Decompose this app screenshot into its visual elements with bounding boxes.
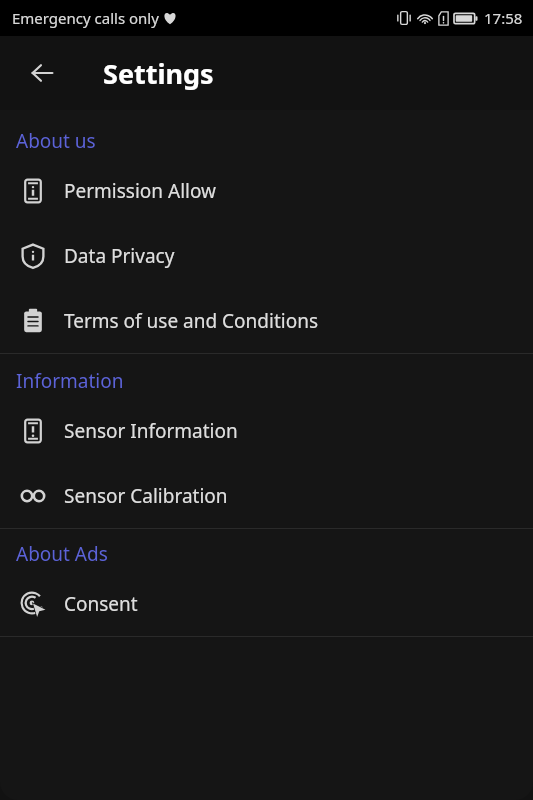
staticText: Terms of use and Conditions bbox=[64, 308, 319, 334]
button[interactable]: Terms of use and Conditions bbox=[0, 288, 533, 353]
button[interactable]: Sensor Calibration bbox=[0, 463, 533, 528]
button[interactable]: Sensor Information bbox=[0, 398, 533, 463]
button[interactable]: Data Privacy bbox=[0, 223, 533, 288]
staticText: Data Privacy bbox=[64, 243, 175, 269]
staticText: Emergency calls only bbox=[12, 8, 159, 28]
staticText: About us bbox=[16, 128, 96, 154]
staticText: Permission Allow bbox=[64, 178, 217, 204]
staticText: Sensor Information bbox=[64, 418, 238, 444]
staticText: Consent bbox=[64, 591, 138, 617]
staticText: Sensor Calibration bbox=[64, 483, 228, 509]
button[interactable]: Back bbox=[18, 49, 66, 97]
staticText: Information bbox=[16, 368, 124, 394]
button[interactable]: Consent bbox=[0, 571, 533, 636]
staticText: About Ads bbox=[16, 541, 108, 567]
staticText: 17:58 bbox=[484, 8, 523, 28]
button[interactable]: Permission Allow bbox=[0, 158, 533, 223]
staticText: Settings bbox=[103, 55, 214, 92]
